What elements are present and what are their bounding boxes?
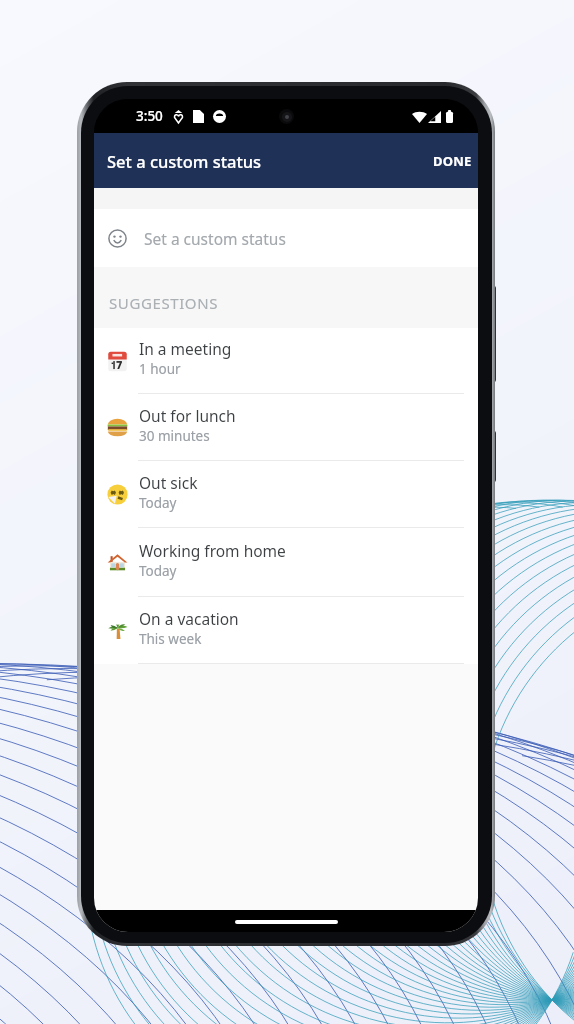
- button[interactable]: Choose an emoji: [94, 209, 478, 267]
- button[interactable]: Working from home: [94, 528, 478, 597]
- button[interactable]: Out for lunch: [94, 394, 478, 461]
- staticText: This week: [139, 630, 202, 648]
- staticText: DONE: [433, 152, 472, 170]
- staticText: 1 hour: [139, 360, 181, 378]
- staticText: 3:50: [136, 107, 163, 125]
- staticText: Out for lunch: [139, 405, 236, 426]
- staticText: Working from home: [139, 540, 286, 561]
- staticText: SUGGESTIONS: [109, 293, 218, 313]
- staticText: On a vacation: [139, 608, 239, 629]
- staticText: Out sick: [139, 472, 198, 493]
- other: Choose an emoji: [108, 229, 127, 248]
- staticText: Set a custom status: [107, 150, 262, 172]
- button[interactable]: DONE: [425, 140, 478, 182]
- button[interactable]: On a vacation: [94, 597, 478, 664]
- staticText: Set a custom status: [144, 228, 286, 249]
- staticText: Today: [139, 562, 177, 580]
- button[interactable]: In a meeting: [94, 328, 478, 394]
- staticText: 30 minutes: [139, 427, 210, 445]
- button[interactable]: Out sick: [94, 461, 478, 528]
- staticText: Today: [139, 494, 177, 512]
- staticText: In a meeting: [139, 338, 232, 359]
